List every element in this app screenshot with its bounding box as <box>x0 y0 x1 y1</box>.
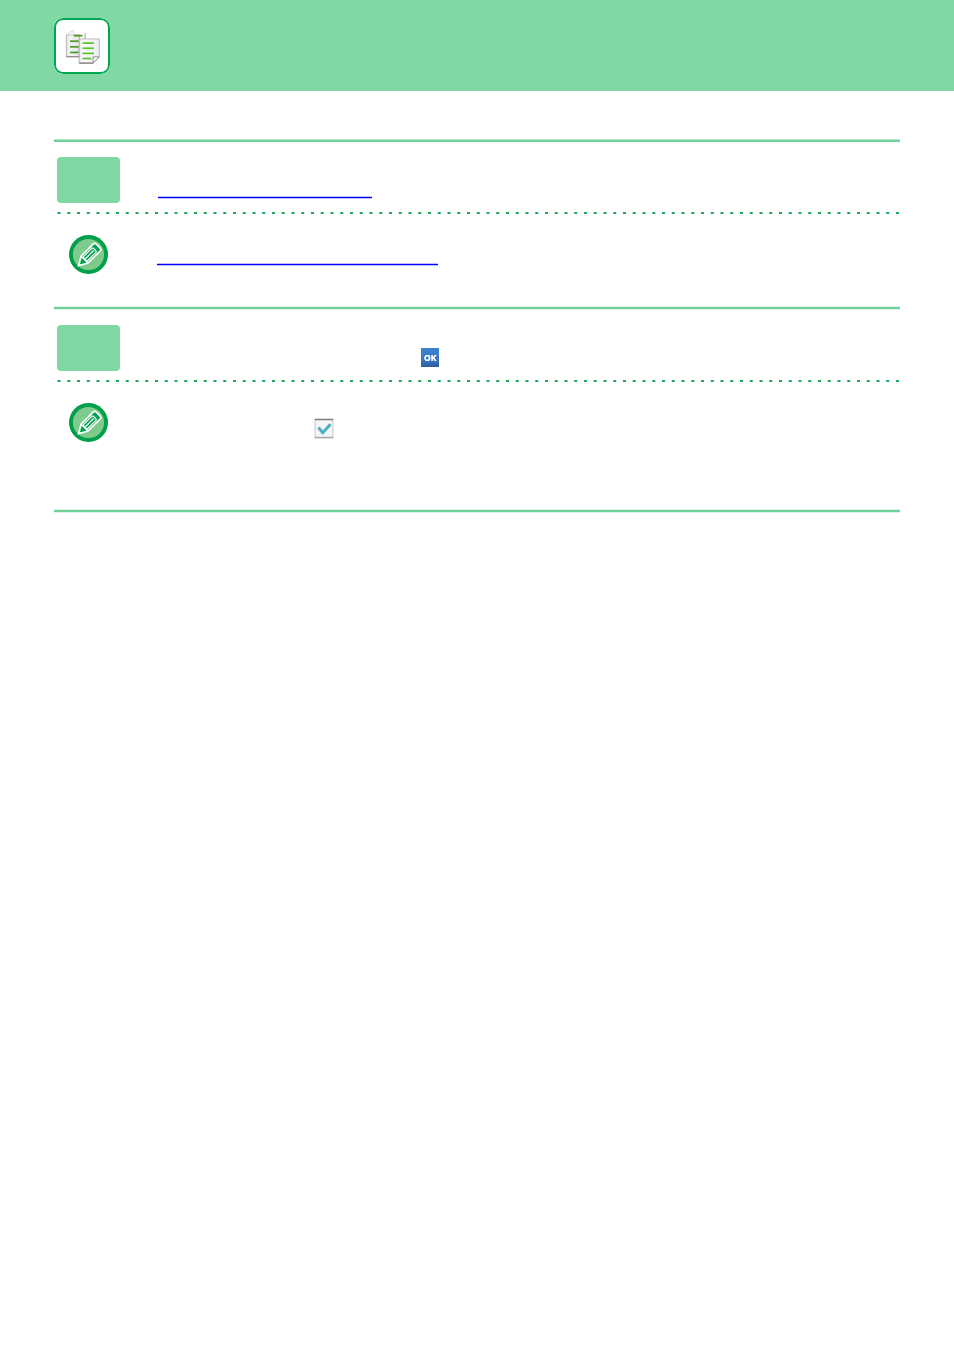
button[interactable]: OK <box>421 348 439 367</box>
button[interactable]: Step 2 <box>57 325 120 371</box>
button[interactable]: Checkbox <box>315 419 333 438</box>
staticText: OK <box>424 352 437 364</box>
button[interactable]: Step 1 <box>57 157 120 203</box>
button[interactable]: Note <box>69 235 108 274</box>
button[interactable]: Copy <box>54 18 110 74</box>
button[interactable]: Note <box>69 403 108 442</box>
